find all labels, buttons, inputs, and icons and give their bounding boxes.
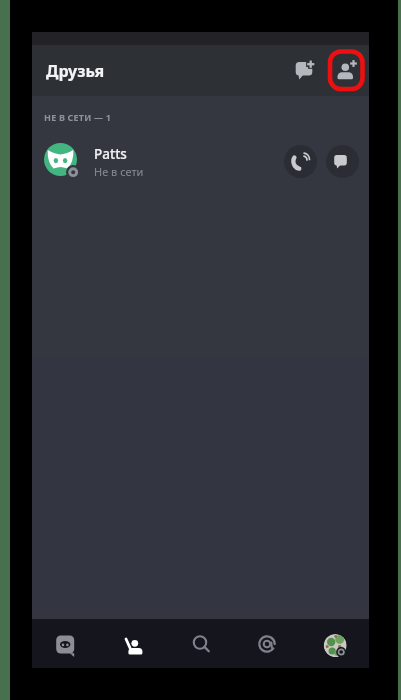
staticText: Patts (94, 145, 127, 163)
staticText: Не в сети (94, 164, 144, 179)
button[interactable] (302, 619, 369, 668)
button[interactable]: Patts (32, 133, 369, 189)
button[interactable] (286, 51, 322, 87)
button[interactable] (100, 619, 168, 668)
button[interactable] (328, 52, 364, 88)
button[interactable] (235, 619, 302, 668)
button[interactable] (326, 145, 359, 178)
staticText: НЕ В СЕТИ — 1 (44, 111, 112, 123)
button[interactable] (32, 619, 100, 668)
staticText: Друзья (46, 60, 105, 82)
button[interactable] (168, 619, 235, 668)
button[interactable] (284, 145, 317, 178)
